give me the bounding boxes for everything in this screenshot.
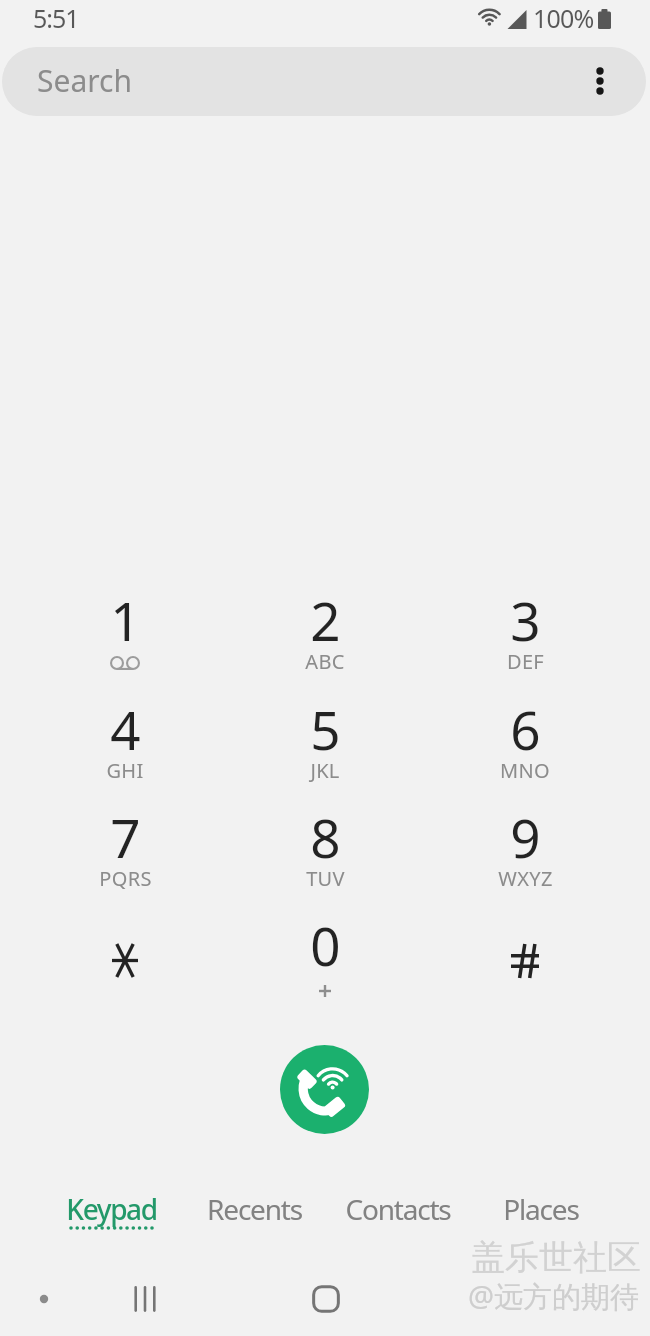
staticText: 9 [510, 801, 541, 873]
staticText: 0 [310, 909, 341, 981]
button[interactable]: Call [280, 1045, 369, 1134]
staticText: JKL [310, 757, 340, 784]
button[interactable]: Key * [45, 906, 205, 1010]
button[interactable]: More options [575, 47, 629, 116]
staticText: 盖乐世社区 [471, 1236, 641, 1279]
staticText: 3 [510, 584, 541, 656]
button[interactable]: Key # [445, 906, 605, 1010]
staticText: 5:51 [33, 1, 79, 35]
staticText: Contacts [345, 1190, 451, 1228]
staticText: Search [37, 60, 132, 101]
button[interactable]: Key 6 [445, 690, 605, 794]
button[interactable]: Recent apps [119, 1279, 171, 1319]
staticText: MNO [500, 757, 550, 784]
staticText: 8 [310, 801, 341, 873]
button[interactable]: Key 7 [45, 798, 205, 902]
staticText: 6 [510, 693, 541, 765]
button[interactable]: Recents [189, 1186, 319, 1236]
staticText: DEF [507, 648, 544, 675]
staticText: ABC [305, 648, 345, 675]
button[interactable]: Key 5 [245, 690, 405, 794]
button[interactable]: Contacts [333, 1186, 463, 1236]
staticText: 7 [110, 801, 141, 873]
button[interactable]: Key 9 [445, 798, 605, 902]
staticText: 2 [310, 584, 341, 656]
button[interactable]: Key 3 [445, 581, 605, 685]
button[interactable]: Home [300, 1279, 352, 1319]
staticText: 100% [533, 1, 594, 35]
staticText: TUV [306, 865, 345, 892]
button[interactable]: Key 8 [245, 798, 405, 902]
staticText: 4 [110, 693, 141, 765]
staticText: PQRS [99, 865, 152, 892]
staticText: Keypad [66, 1190, 157, 1228]
button[interactable]: Key 0 [245, 906, 405, 1010]
button[interactable]: Key 4 [45, 690, 205, 794]
staticText: @远方的期待 [468, 1276, 640, 1316]
button[interactable]: Key 1 [45, 581, 205, 685]
button[interactable]: Places [476, 1186, 606, 1236]
button[interactable]: Key 2 [245, 581, 405, 685]
button[interactable]: Keypad [46, 1186, 176, 1236]
staticText: Places [503, 1190, 579, 1228]
staticText: GHI [106, 757, 144, 784]
staticText: WXYZ [498, 865, 553, 892]
button[interactable]: Search [2, 47, 646, 116]
staticText: 5 [310, 693, 341, 765]
staticText: Recents [207, 1190, 302, 1228]
staticText: 1 [110, 584, 141, 656]
